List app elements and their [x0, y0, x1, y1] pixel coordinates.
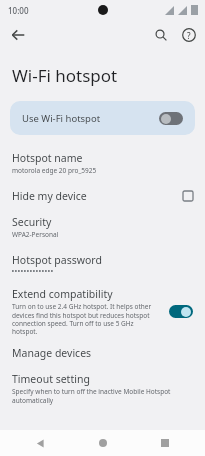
- button[interactable]: Manage devices: [0, 346, 205, 360]
- staticText: WPA2-Personal: [12, 230, 59, 239]
- staticText: Turn on to use 2.4 GHz hotspot. It helps…: [12, 302, 152, 336]
- button[interactable]: Use Wi-Fi hotspot: [10, 101, 195, 135]
- button[interactable]: Recent apps: [153, 431, 177, 455]
- button[interactable]: Extend compatibility: [0, 287, 205, 336]
- button[interactable]: Hide my device: [0, 189, 205, 203]
- staticText: Manage devices: [12, 346, 92, 360]
- staticText: Timeout setting: [12, 372, 90, 386]
- button[interactable]: Hotspot password: [0, 253, 205, 273]
- staticText: Hide my device: [12, 189, 87, 203]
- button[interactable]: Hotspot name: [0, 151, 205, 175]
- staticText: ?: [187, 30, 191, 41]
- button[interactable]: Timeout setting: [0, 372, 205, 405]
- button[interactable]: Help: [177, 23, 201, 47]
- staticText: Specify when to turn off the inactive Mo…: [12, 387, 179, 405]
- button[interactable]: Back: [6, 23, 30, 47]
- staticText: motorola edge 20 pro_5925: [12, 166, 97, 175]
- staticText: Hotspot password: [12, 253, 102, 267]
- staticText: 10:00: [8, 5, 29, 16]
- button[interactable]: Search: [149, 23, 173, 47]
- staticText: Use Wi-Fi hotspot: [22, 112, 101, 125]
- staticText: Hotspot name: [12, 151, 83, 165]
- staticText: Security: [12, 215, 52, 229]
- staticText: Extend compatibility: [12, 287, 113, 301]
- button[interactable]: Home: [91, 431, 115, 455]
- button[interactable]: Security: [0, 215, 205, 239]
- button[interactable]: Back: [28, 431, 52, 455]
- staticText: Wi-Fi hotspot: [12, 64, 118, 87]
